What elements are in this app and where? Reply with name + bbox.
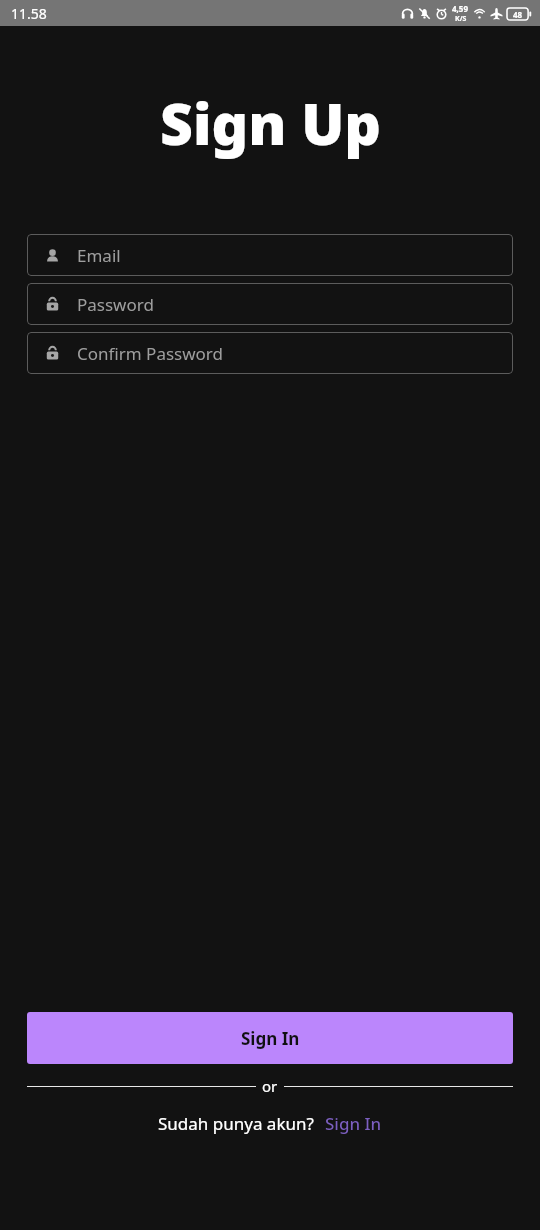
staticText: 4,59 <box>452 3 469 14</box>
staticText: Email <box>77 244 121 267</box>
button[interactable]: Sign In <box>27 1012 513 1064</box>
staticText: or <box>262 1076 278 1096</box>
staticText: Sign Up <box>160 84 381 162</box>
staticText: Sudah punya akun? <box>158 1112 314 1135</box>
button[interactable]: Confirm Password <box>27 332 513 374</box>
staticText: K/S <box>455 14 467 24</box>
staticText: Confirm Password <box>77 342 223 365</box>
staticText: Password <box>77 293 154 316</box>
staticText: 48 <box>513 9 523 20</box>
staticText: Sign In <box>241 1027 300 1050</box>
staticText: 11.58 <box>11 4 47 23</box>
staticText: Sign In <box>325 1112 382 1135</box>
button[interactable]: Sign In <box>325 1112 382 1135</box>
button[interactable]: Email <box>27 234 513 276</box>
button[interactable]: Password <box>27 283 513 325</box>
